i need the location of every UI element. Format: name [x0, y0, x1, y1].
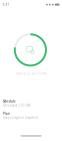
staticText: Backing up your library	[15, 72, 46, 75]
staticText: Schedule	[3, 100, 16, 103]
staticText: 9:41	[3, 3, 10, 6]
staticText: Daily encrypted snapshots	[3, 116, 38, 119]
staticText: Every day at 2:00 AM	[3, 104, 30, 107]
staticText: Plan	[3, 112, 10, 115]
